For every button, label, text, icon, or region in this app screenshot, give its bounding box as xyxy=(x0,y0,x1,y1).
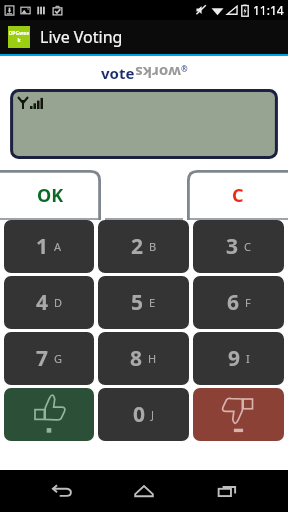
staticText: OK xyxy=(37,183,64,208)
button[interactable]: 9 xyxy=(193,332,284,385)
staticText: 6 xyxy=(227,288,240,317)
staticText: works xyxy=(135,63,181,83)
staticText: 8 xyxy=(130,344,143,373)
staticText: 7 xyxy=(36,344,49,373)
staticText: G xyxy=(54,351,63,366)
button[interactable]: Recent apps xyxy=(205,470,249,512)
staticText: DPGweek xyxy=(8,30,30,44)
staticText: 3 xyxy=(226,232,239,261)
staticText: C xyxy=(232,183,244,208)
button[interactable]: 8 xyxy=(98,332,189,385)
button[interactable]: 7 xyxy=(4,332,94,385)
button[interactable]: 2 xyxy=(98,220,189,273)
staticText: F xyxy=(245,295,251,310)
staticText: C xyxy=(244,239,251,254)
staticText: 1 xyxy=(36,232,49,261)
staticText: I xyxy=(246,351,250,366)
staticText: 11:14 xyxy=(253,2,284,18)
button[interactable]: C xyxy=(187,170,288,220)
staticText: Live Voting xyxy=(40,26,123,48)
staticText: D xyxy=(54,295,63,310)
staticText: 0 xyxy=(133,400,146,429)
staticText: 9 xyxy=(228,344,241,373)
staticText: A xyxy=(54,239,62,254)
button[interactable]: 6 xyxy=(193,276,284,329)
staticText: ® xyxy=(181,63,188,74)
staticText: 4 xyxy=(36,288,49,317)
button[interactable]: 4 xyxy=(4,276,94,329)
staticText: E xyxy=(149,295,156,310)
staticText: 2 xyxy=(131,232,144,261)
staticText: H xyxy=(148,351,157,366)
staticText: J xyxy=(151,407,155,422)
button[interactable]: Home xyxy=(122,470,166,512)
button[interactable]: 0 xyxy=(98,388,189,441)
button[interactable]: Back xyxy=(39,470,83,512)
staticText: 5 xyxy=(131,288,144,317)
button[interactable]: Vote yes xyxy=(4,388,94,441)
button[interactable]: 3 xyxy=(193,220,284,273)
button[interactable]: OK xyxy=(0,170,101,220)
button[interactable]: 1 xyxy=(4,220,94,273)
button[interactable]: 5 xyxy=(98,276,189,329)
staticText: B xyxy=(149,239,157,254)
staticText: vote xyxy=(101,63,135,83)
button[interactable]: Vote no xyxy=(193,388,284,441)
